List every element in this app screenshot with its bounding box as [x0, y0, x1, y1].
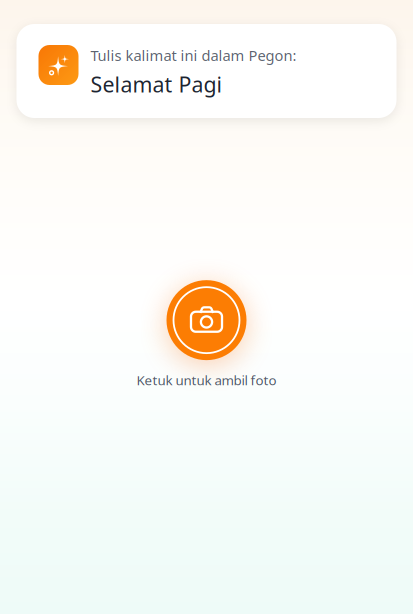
- staticText: Ketuk untuk ambil foto: [136, 371, 276, 389]
- button[interactable]: Ketuk untuk ambil foto: [116, 279, 296, 389]
- staticText: Selamat Pagi: [90, 70, 222, 98]
- staticText: Tulis kalimat ini dalam Pegon:: [90, 46, 296, 65]
- button[interactable]: Tulis kalimat ini dalam Pegon:: [16, 24, 396, 118]
